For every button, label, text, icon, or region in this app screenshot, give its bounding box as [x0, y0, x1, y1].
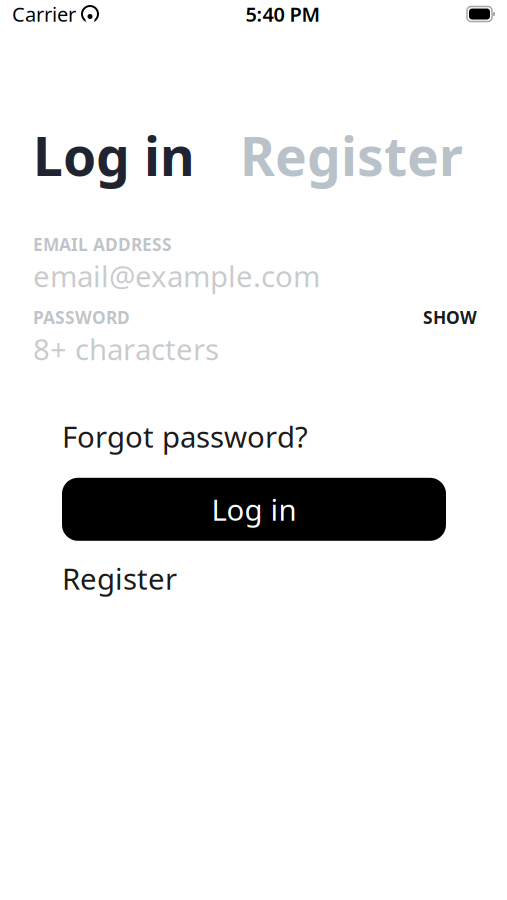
staticText: Register: [62, 559, 177, 598]
staticText: [76, 1, 81, 27]
staticText: PASSWORD: [33, 306, 130, 329]
staticText: Log in: [33, 120, 195, 191]
staticText: Forgot password?: [62, 417, 308, 456]
button[interactable]: Register: [62, 559, 177, 598]
staticText: Carrier: [12, 1, 76, 27]
button[interactable]: 8+ characters: [0, 329, 507, 369]
button[interactable]: Forgot password?: [62, 417, 308, 456]
staticText: 5:40 PM: [245, 1, 320, 27]
staticText: email@example.com: [33, 256, 320, 295]
button[interactable]: Log in: [33, 120, 195, 191]
button[interactable]: Register: [240, 120, 463, 191]
button[interactable]: SHOW: [423, 306, 477, 329]
staticText: Register: [240, 120, 463, 191]
staticText: EMAIL ADDRESS: [33, 233, 172, 256]
button[interactable]: email@example.com: [0, 256, 507, 296]
staticText: Log in: [211, 490, 296, 529]
staticText: 8+ characters: [33, 329, 219, 368]
staticText: SHOW: [423, 306, 477, 329]
button[interactable]: Log in: [62, 478, 446, 541]
